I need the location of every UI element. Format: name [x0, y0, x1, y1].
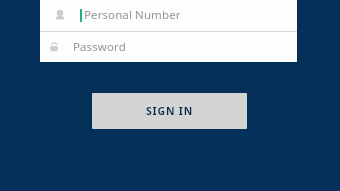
button[interactable]: Personal Number field: [40, 0, 297, 31]
staticText: Password: [73, 39, 126, 55]
button[interactable]: SIGN IN: [92, 93, 247, 129]
button[interactable]: Password field: [40, 32, 297, 62]
staticText: SIGN IN: [146, 104, 193, 118]
staticText: Personal Number: [84, 7, 181, 23]
